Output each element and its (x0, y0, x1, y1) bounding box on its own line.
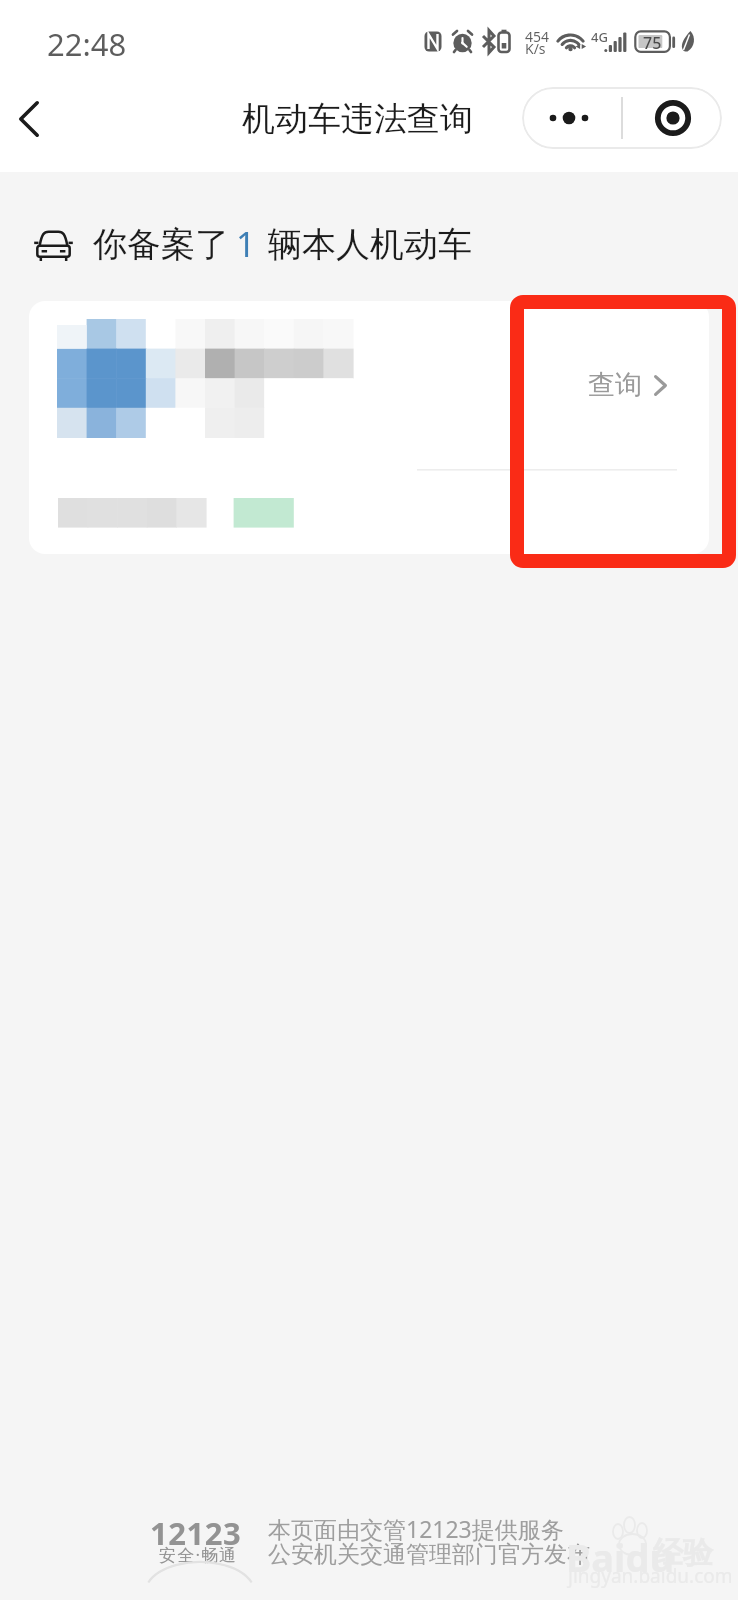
staticText: 1 (236, 221, 256, 267)
button[interactable]: 查询 (29, 301, 709, 554)
button[interactable]: 返回 (0, 84, 60, 154)
staticText: 公安机关交通管理部门官方发布 (268, 1540, 590, 1569)
staticText: 75 (643, 32, 662, 54)
staticText: 机动车违法查询 (242, 98, 473, 140)
staticText: 22:48 (47, 23, 127, 65)
staticText: 454 (525, 27, 550, 46)
staticText: 4G (591, 28, 608, 46)
staticText: jingyan.baidu.com (568, 1563, 733, 1589)
staticText: Baidu (566, 1531, 675, 1583)
staticText: 经验 (653, 1534, 713, 1572)
staticText: 你备案了 (93, 223, 229, 266)
staticText: K/s (525, 39, 546, 58)
staticText: 辆本人机动车 (268, 223, 472, 266)
staticText: 12123 (150, 1512, 242, 1554)
button[interactable]: 查询 (557, 345, 697, 425)
staticText: 本页面由交管12123提供服务 (268, 1513, 564, 1544)
staticText: 安全·畅通 (159, 1543, 238, 1566)
button[interactable]: 关闭 (623, 87, 722, 149)
button[interactable]: 更多 (522, 87, 621, 149)
staticText: 查询 (588, 368, 642, 402)
